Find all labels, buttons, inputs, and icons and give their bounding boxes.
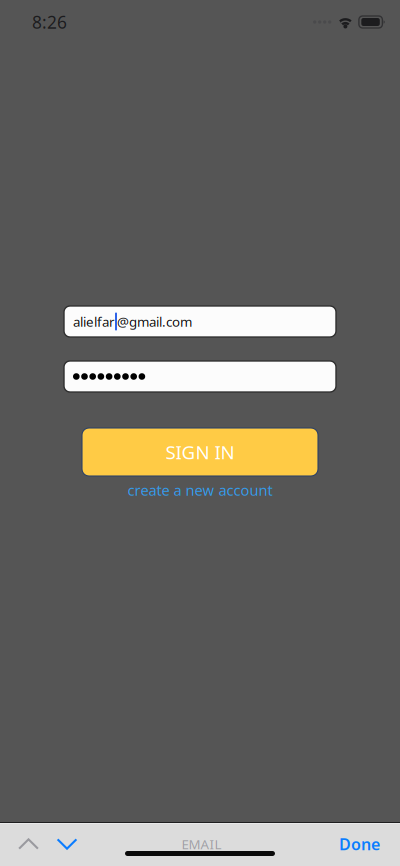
- button[interactable]: Previous field: [11, 822, 46, 866]
- staticText: alielfar: [73, 313, 115, 330]
- button[interactable]: Next field: [46, 822, 88, 866]
- staticText: create a new account: [127, 480, 272, 500]
- button[interactable]: SIGN IN: [82, 428, 318, 476]
- button[interactable]: Email: [64, 306, 336, 337]
- staticText: Done: [339, 833, 380, 855]
- staticText: 8:26: [32, 10, 67, 33]
- button[interactable]: create a new account: [127, 482, 272, 498]
- button[interactable]: Done: [339, 822, 400, 866]
- button[interactable]: Password: [64, 361, 336, 392]
- staticText: EMAIL: [181, 835, 221, 853]
- staticText: @gmail.com: [117, 313, 192, 330]
- staticText: SIGN IN: [165, 440, 234, 464]
